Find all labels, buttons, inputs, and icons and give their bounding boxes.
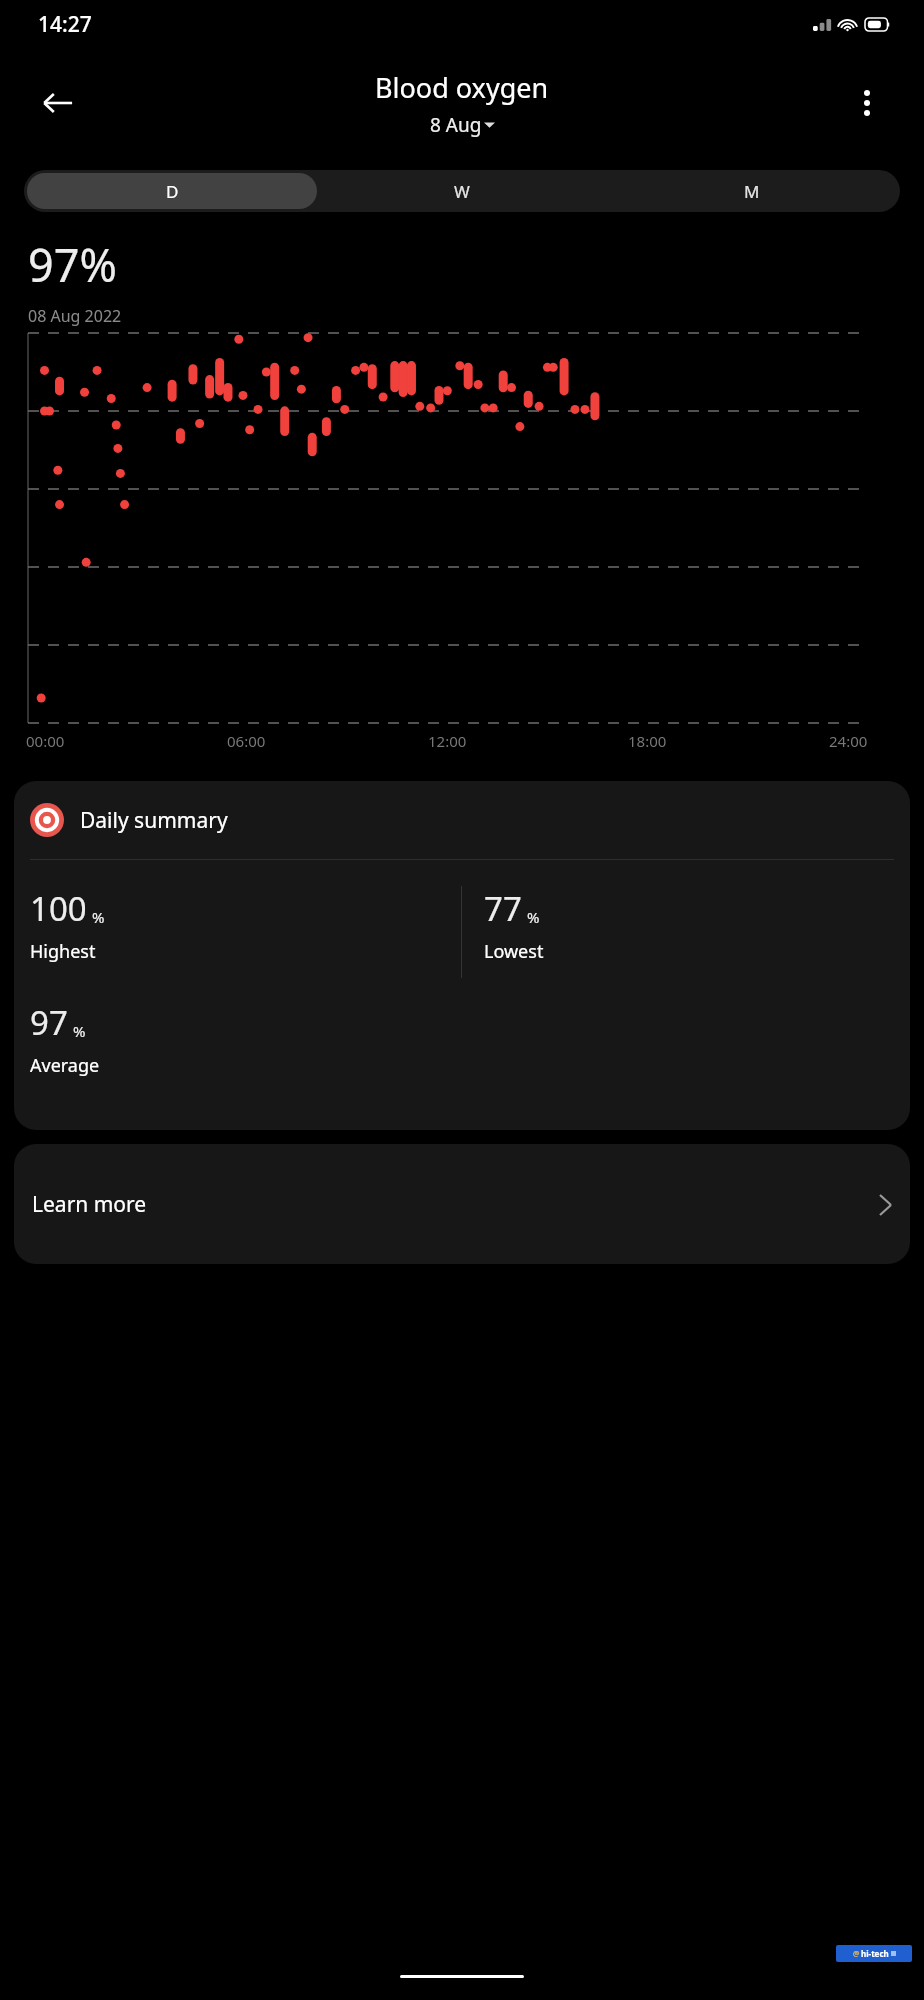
staticText: hi-tech [861, 1948, 889, 1959]
staticText: % [527, 907, 540, 927]
staticText: 8 Aug [430, 112, 482, 138]
button[interactable]: D [27, 173, 317, 209]
staticText: 97% [28, 234, 117, 295]
staticText: 100 [30, 886, 87, 931]
staticText: % [73, 1021, 86, 1041]
staticText: Average [30, 1053, 100, 1078]
button[interactable]: Daily summary [14, 781, 910, 1130]
staticText: Daily summary [80, 806, 228, 835]
staticText: 14:27 [38, 10, 92, 39]
staticText: 00:00 [26, 731, 65, 751]
staticText: W [454, 180, 470, 203]
button[interactable]: Learn more [14, 1144, 910, 1264]
staticText: 08 Aug 2022 [28, 305, 122, 327]
staticText: M [744, 180, 760, 203]
button[interactable]: 8 Aug [430, 112, 495, 138]
staticText: 77 [484, 886, 522, 931]
button[interactable]: W [317, 173, 607, 209]
staticText: 12:00 [428, 731, 467, 751]
staticText: 18:00 [628, 731, 667, 751]
staticText: 97 [30, 1000, 68, 1045]
staticText: Lowest [484, 939, 544, 964]
button[interactable]: Back [30, 75, 86, 131]
staticText: Blood oxygen [375, 69, 549, 106]
staticText: 24:00 [829, 731, 868, 751]
staticText: D [166, 180, 179, 203]
staticText: @ [853, 1949, 860, 1959]
staticText: Highest [30, 939, 96, 964]
button[interactable]: M [607, 173, 897, 209]
staticText: 06:00 [227, 731, 266, 751]
staticText: % [92, 907, 105, 927]
button[interactable]: More options [840, 76, 894, 130]
staticText: Learn more [32, 1190, 147, 1219]
